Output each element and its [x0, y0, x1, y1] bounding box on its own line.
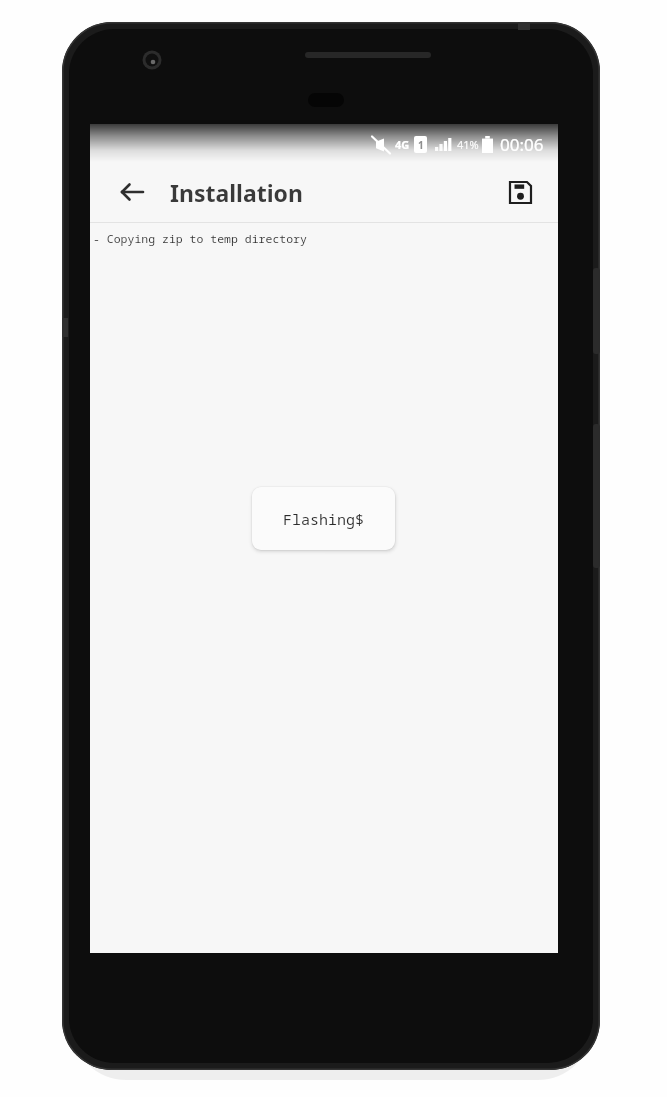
button[interactable]: Save log	[494, 166, 546, 218]
staticText: 1	[418, 138, 424, 152]
staticText: 00:06	[500, 133, 544, 156]
button[interactable]: Flashing$	[252, 487, 395, 550]
staticText: 4G	[395, 137, 410, 152]
staticText: 41%	[457, 137, 479, 152]
staticText: - Copying zip to temp directory	[93, 231, 307, 247]
staticText: Installation	[170, 177, 303, 208]
button[interactable]: Back	[104, 164, 160, 220]
staticText: Flashing$	[283, 509, 365, 529]
